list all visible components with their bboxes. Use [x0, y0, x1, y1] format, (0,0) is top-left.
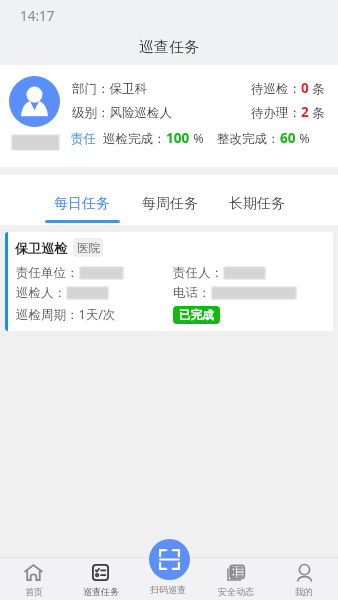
staticText: 级别：风险巡检人 — [72, 105, 172, 121]
staticText: 0 — [301, 79, 309, 97]
staticText: 首页 — [25, 586, 43, 597]
staticText: 长期任务 — [229, 195, 285, 213]
staticText: 巡检周期：1天/次 — [16, 306, 116, 323]
staticText: 保卫巡检 — [15, 240, 67, 256]
button[interactable]: 每周任务 — [131, 175, 209, 225]
staticText: 电话： — [173, 285, 211, 301]
staticText: 安全动态 — [218, 586, 254, 597]
staticText: 部门：保卫科 — [72, 81, 147, 97]
staticText: 责任 — [71, 131, 96, 147]
button[interactable]: 我的 — [270, 557, 338, 600]
staticText: % — [190, 130, 204, 147]
staticText: 100 — [166, 129, 190, 147]
staticText: 60 — [280, 129, 296, 147]
button[interactable]: 安全动态 — [202, 557, 270, 600]
staticText: 14:17 — [20, 7, 55, 25]
staticText: % — [296, 130, 310, 147]
staticText: 巡查任务 — [83, 586, 119, 597]
staticText: 条 — [309, 80, 325, 97]
button[interactable]: 扫码巡查 — [134, 557, 202, 600]
staticText: 2 — [301, 103, 309, 121]
button[interactable]: 长期任务 — [218, 175, 296, 225]
staticText: 整改完成： — [217, 131, 280, 147]
button[interactable]: 首页 — [0, 557, 67, 600]
button[interactable]: 巡查任务 — [67, 557, 134, 600]
staticText: 扫码巡查 — [150, 584, 186, 595]
button[interactable]: 扫码巡查 — [149, 539, 190, 580]
staticText: 每日任务 — [54, 195, 110, 213]
staticText: 责任单位： — [16, 265, 79, 281]
staticText: 医院 — [77, 241, 100, 255]
staticText: 已完成 — [179, 308, 214, 322]
staticText: 巡查任务 — [139, 38, 199, 57]
staticText: 条 — [309, 104, 325, 121]
button[interactable]: 保卫巡检 — [5, 232, 333, 331]
staticText: 待办理： — [251, 105, 301, 121]
staticText: 巡检人： — [16, 285, 66, 301]
staticText: 每周任务 — [142, 195, 198, 213]
button[interactable]: 每日任务 — [43, 175, 121, 225]
staticText: 我的 — [295, 586, 313, 597]
staticText: 待巡检： — [251, 81, 301, 97]
staticText: 责任人： — [173, 265, 223, 281]
staticText: 巡检完成： — [103, 131, 166, 147]
